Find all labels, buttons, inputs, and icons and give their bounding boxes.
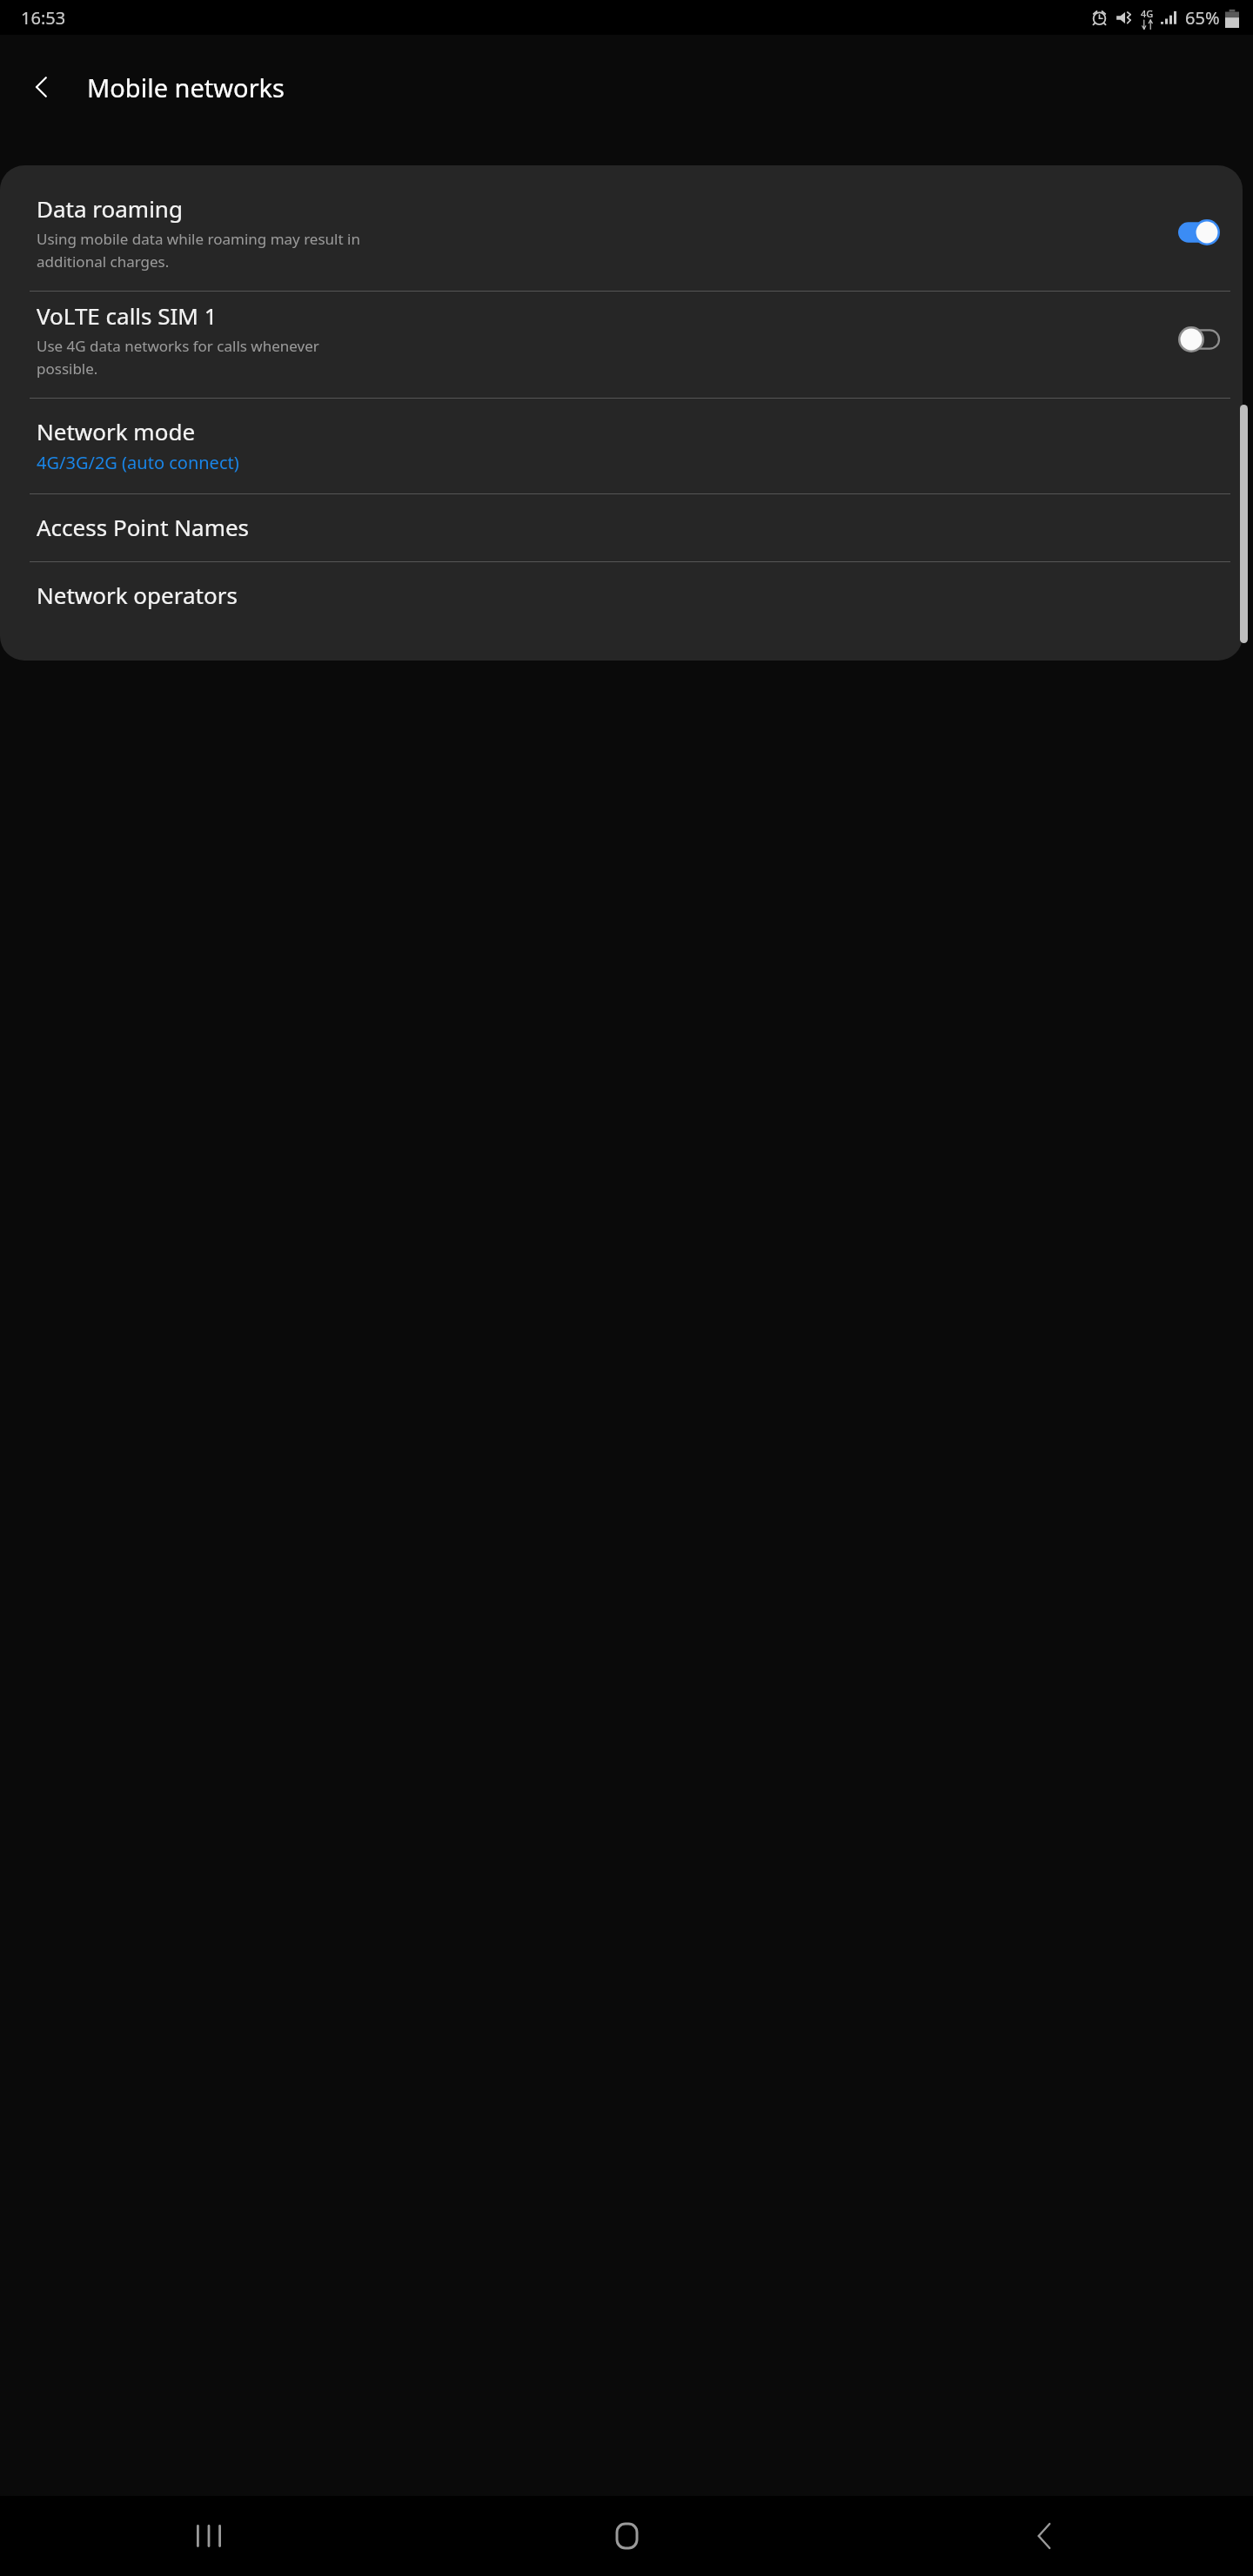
staticText: 4G	[1141, 7, 1154, 20]
staticText: VoLTE calls SIM 1	[37, 300, 218, 331]
button[interactable]: Data roaming	[0, 184, 1243, 291]
staticText: Mobile networks	[87, 70, 285, 104]
button[interactable]: VoLTE calls SIM 1	[0, 292, 1243, 398]
staticText: 4G/3G/2G (auto connect)	[37, 451, 239, 474]
button[interactable]: Network operators	[0, 562, 1243, 629]
button[interactable]: Back	[0, 45, 84, 129]
staticText: Use 4G data networks for calls whenever …	[37, 336, 319, 379]
button[interactable]: Back	[835, 2496, 1253, 2576]
staticText: 16:53	[21, 6, 66, 30]
staticText: 65%	[1185, 6, 1220, 30]
staticText: Network mode	[37, 416, 196, 446]
staticText: Network operators	[37, 580, 238, 610]
button[interactable]: Access Point Names	[0, 494, 1243, 561]
button[interactable]: Network mode	[0, 399, 1243, 493]
button[interactable]: Toggle off	[1178, 326, 1220, 352]
staticText: Data roaming	[37, 193, 183, 224]
button[interactable]: Toggle on	[1178, 219, 1220, 245]
staticText: Access Point Names	[37, 512, 250, 542]
button[interactable]: Recents	[0, 2496, 418, 2576]
staticText: Using mobile data while roaming may resu…	[37, 229, 360, 272]
button[interactable]: Home	[418, 2496, 835, 2576]
